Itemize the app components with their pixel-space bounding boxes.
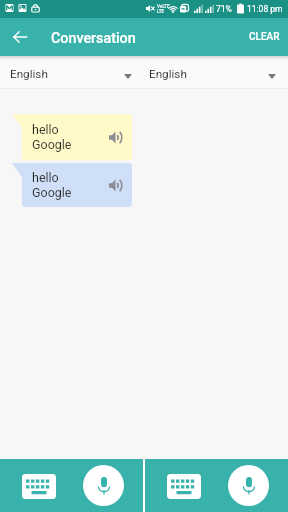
button[interactable]: Microphone — [83, 465, 124, 506]
staticText: English — [149, 67, 187, 81]
staticText: English — [10, 67, 48, 81]
button[interactable]: CLEAR — [237, 18, 288, 56]
button[interactable]: Back — [4, 21, 36, 53]
staticText: Google — [32, 185, 72, 200]
button[interactable]: English — [138, 56, 287, 89]
button[interactable]: Keyboard — [159, 466, 209, 506]
staticText: VoLTE — [157, 4, 170, 9]
staticText: 11:08 pm — [247, 4, 283, 14]
staticText: 71% — [216, 4, 232, 14]
staticText: CLEAR — [249, 31, 280, 43]
staticText: hello — [32, 170, 59, 185]
staticText: LTE — [157, 9, 165, 14]
staticText: Google — [32, 137, 72, 152]
button[interactable]: Play audio — [103, 173, 127, 197]
button[interactable]: Microphone — [228, 465, 269, 506]
button[interactable]: Keyboard — [14, 466, 64, 506]
button[interactable]: English — [0, 56, 143, 89]
staticText: hello — [32, 122, 59, 137]
staticText: Conversation — [51, 30, 136, 47]
button[interactable]: Play audio — [103, 125, 127, 149]
